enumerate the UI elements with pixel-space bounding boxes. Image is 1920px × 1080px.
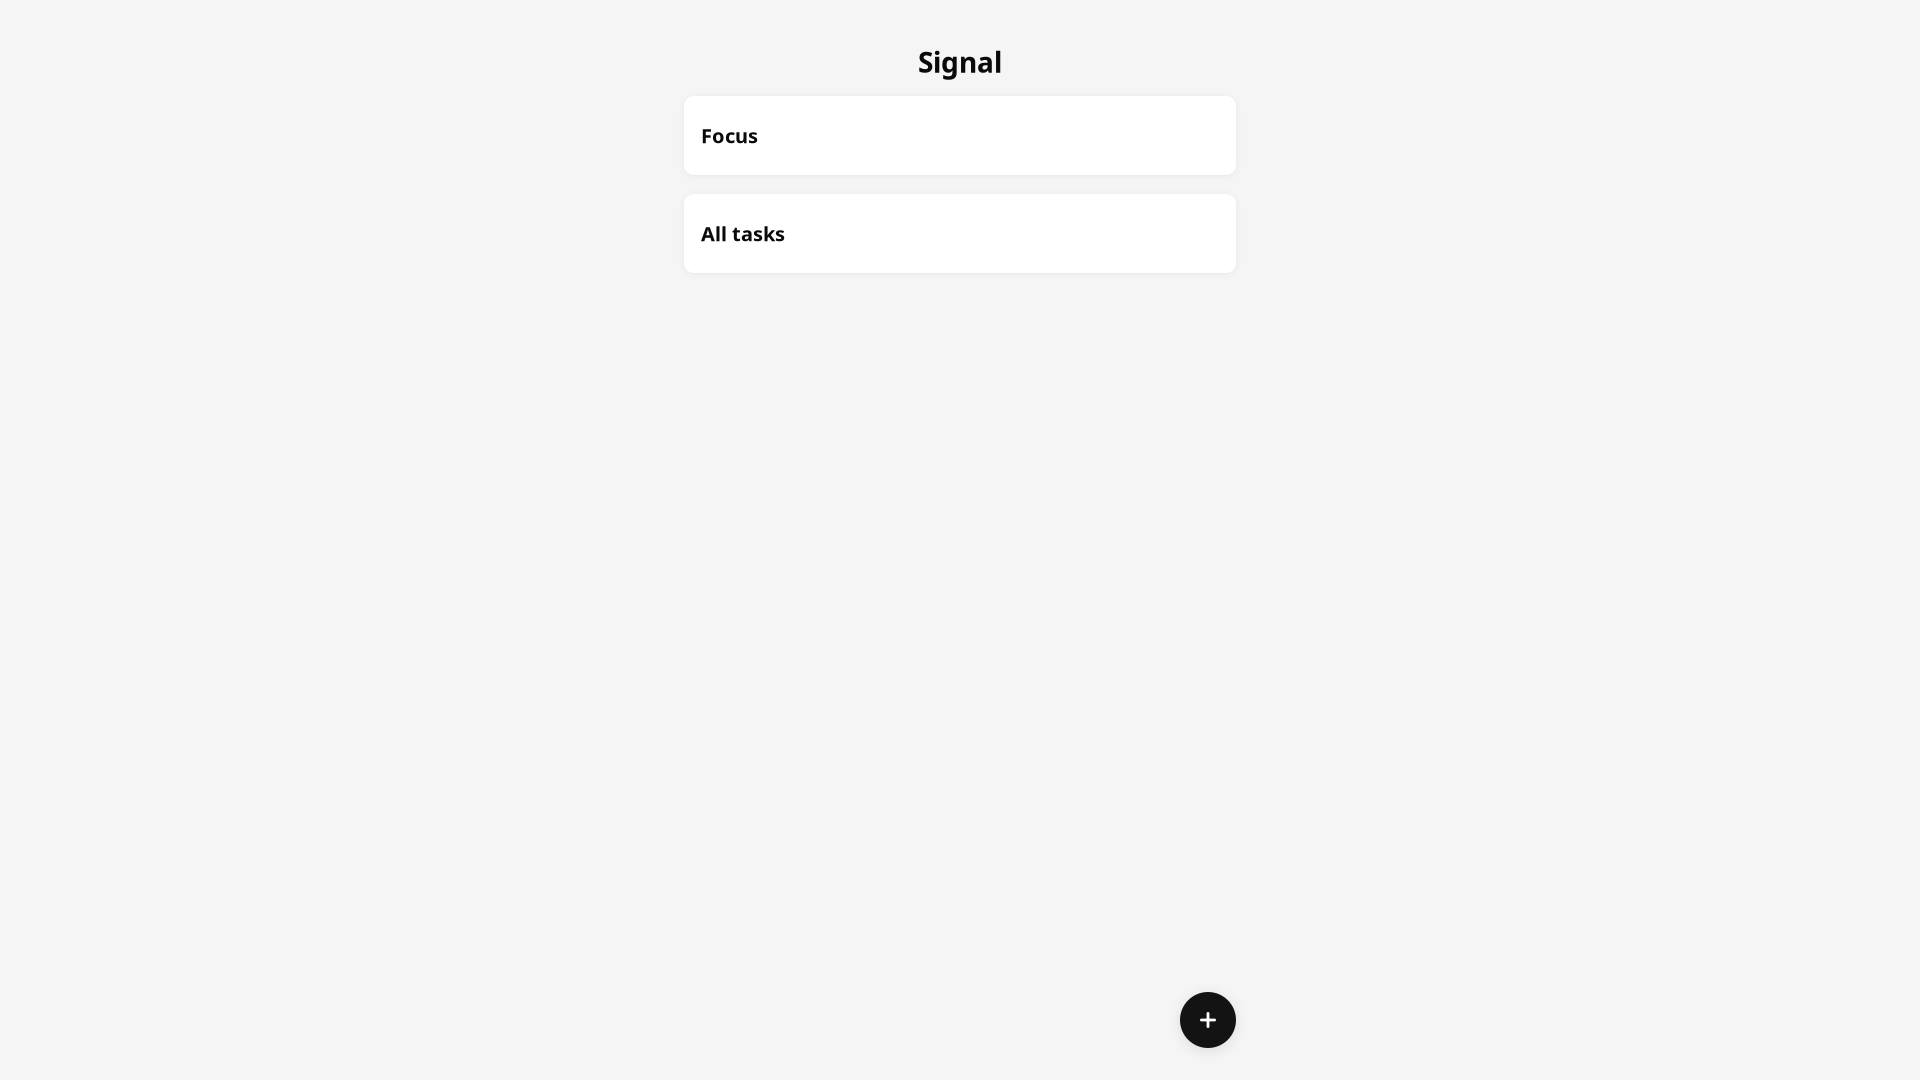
staticText: All tasks (701, 220, 785, 247)
button[interactable]: Focus (684, 96, 1236, 175)
staticText: Focus (701, 122, 758, 149)
staticText: Signal (918, 43, 1002, 81)
button[interactable]: All tasks (684, 194, 1236, 273)
button[interactable]: Add (1180, 992, 1236, 1048)
